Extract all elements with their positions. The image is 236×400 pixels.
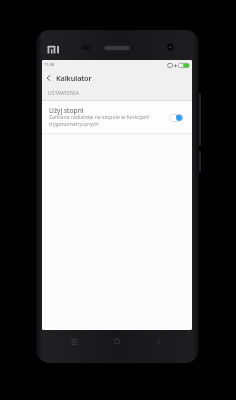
- staticText: Zamiana radianów na stopnie w funkcjach: [49, 114, 150, 121]
- staticText: 11:28: [44, 62, 54, 67]
- staticText: trygonometrycznych: [49, 121, 99, 128]
- button[interactable]: [109, 334, 125, 350]
- button[interactable]: [151, 334, 167, 350]
- button[interactable]: [169, 114, 183, 122]
- staticText: Użyj stopni: [49, 106, 84, 115]
- button[interactable]: Użyj stopni: [42, 101, 192, 133]
- button[interactable]: [66, 334, 82, 350]
- button[interactable]: [42, 68, 55, 88]
- staticText: Kalkulator: [56, 73, 92, 83]
- staticText: USTAWIENIA: [48, 90, 79, 97]
